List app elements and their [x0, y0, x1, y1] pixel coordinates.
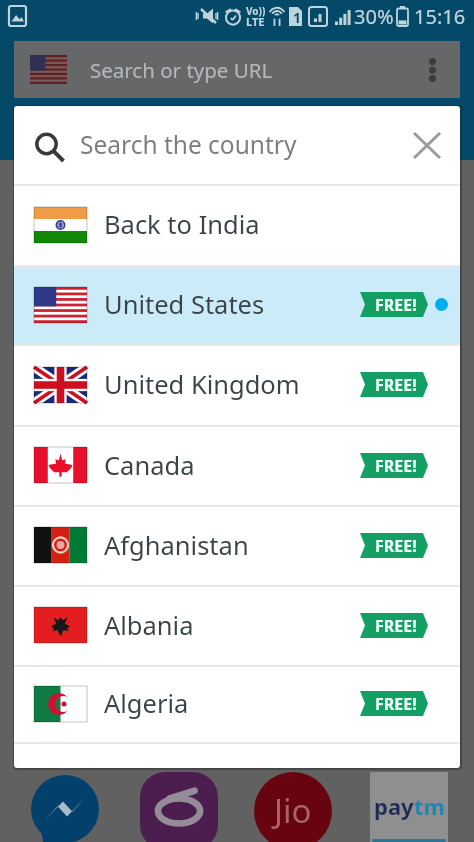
staticText: LTE — [246, 14, 265, 29]
button[interactable]: Search or type URL — [14, 41, 460, 98]
staticText: Vo)) — [246, 4, 266, 18]
button[interactable]: Albania — [14, 585, 460, 665]
button[interactable]: Messenger — [31, 775, 99, 842]
button[interactable]: Algeria — [14, 665, 460, 742]
staticText: FREE! — [375, 455, 417, 477]
staticText: Search the country — [80, 128, 297, 161]
button[interactable]: Afghanistan — [14, 505, 460, 585]
button[interactable]: Canada — [14, 425, 460, 505]
staticText: Algeria — [104, 686, 189, 721]
staticText: Canada — [104, 448, 195, 483]
button[interactable]: United States — [14, 265, 460, 344]
staticText: tm — [414, 791, 445, 821]
staticText: FREE! — [375, 615, 417, 637]
staticText: 15:16 — [414, 3, 466, 30]
staticText: United Kingdom — [104, 367, 300, 402]
staticText: Search or type URL — [90, 56, 273, 84]
staticText: Afghanistan — [104, 528, 249, 563]
staticText: 1 — [293, 8, 302, 27]
other: Search — [32, 127, 68, 163]
button[interactable]: Back to India — [14, 184, 460, 265]
button[interactable]: App — [140, 772, 218, 842]
staticText: Back to India — [104, 207, 260, 242]
staticText: 30% — [354, 3, 394, 30]
staticText: FREE! — [375, 294, 417, 316]
button[interactable]: Paytm — [370, 772, 448, 842]
button[interactable]: United Kingdom — [14, 344, 460, 425]
button[interactable]: Jio — [254, 772, 332, 842]
staticText: United States — [104, 287, 265, 322]
staticText: FREE! — [375, 693, 417, 715]
button[interactable]: More options — [411, 41, 453, 98]
button[interactable]: Clear search — [405, 123, 449, 167]
staticText: Albania — [104, 608, 194, 643]
staticText: FREE! — [375, 535, 417, 557]
staticText: Jio — [274, 788, 312, 833]
staticText: pay — [374, 791, 414, 821]
staticText: FREE! — [375, 374, 417, 396]
